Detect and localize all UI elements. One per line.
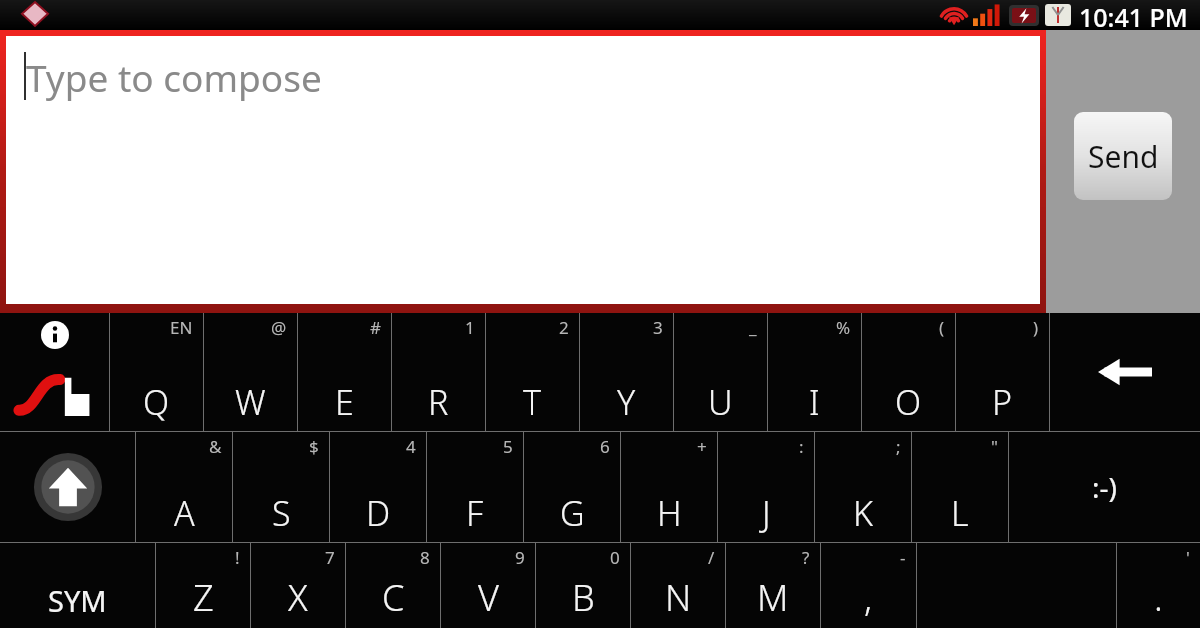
button[interactable]: 9 (441, 543, 535, 628)
staticText: S (272, 490, 291, 536)
button[interactable]: 5 (427, 432, 523, 542)
button[interactable]: 2 (486, 313, 579, 431)
staticText: & (209, 435, 222, 458)
button[interactable]: # (298, 313, 391, 431)
staticText: SYM (48, 581, 107, 620)
staticText: - (900, 546, 906, 569)
staticText: + (697, 435, 707, 458)
button[interactable]: " (912, 432, 1008, 542)
staticText: 7 (325, 546, 335, 569)
staticText: % (836, 316, 851, 339)
staticText: I (809, 379, 820, 425)
staticText: _ (749, 316, 757, 339)
staticText: 9 (515, 546, 525, 569)
staticText: ! (235, 546, 240, 569)
staticText: M (757, 573, 789, 622)
staticText: U (708, 379, 733, 425)
staticText: 5 (503, 435, 513, 458)
staticText: ' (1186, 546, 1190, 569)
staticText: D (366, 490, 391, 536)
staticText: / (708, 546, 715, 569)
staticText: " (991, 435, 998, 458)
button[interactable]: 7 (251, 543, 345, 628)
staticText: H (657, 490, 682, 536)
staticText: ) (1033, 316, 1039, 339)
button[interactable]: Type to compose (6, 36, 1040, 304)
staticText: 1 (465, 316, 475, 339)
staticText: $ (309, 435, 319, 458)
button[interactable]: @ (204, 313, 297, 431)
staticText: :-) (1092, 468, 1117, 506)
staticText: K (853, 490, 873, 536)
staticText: 6 (600, 435, 610, 458)
staticText: : (799, 435, 804, 458)
staticText: ; (896, 435, 901, 458)
staticText: N (665, 573, 692, 622)
staticText: # (370, 316, 381, 339)
staticText: ? (802, 546, 810, 569)
button[interactable]: Send (1074, 112, 1172, 200)
staticText: 8 (420, 546, 430, 569)
staticText: ( (939, 316, 945, 339)
button[interactable]: / (631, 543, 725, 628)
button[interactable]: SYM (0, 543, 155, 628)
staticText: J (762, 490, 771, 536)
button[interactable]: ) (956, 313, 1049, 431)
staticText: W (235, 379, 266, 425)
button[interactable]: EN (110, 313, 203, 431)
button[interactable]: - (821, 543, 916, 628)
staticText: R (428, 379, 449, 425)
button[interactable]: Shift (0, 432, 135, 542)
staticText: V (478, 573, 499, 622)
button[interactable]: ? (726, 543, 820, 628)
staticText: Y (617, 379, 636, 425)
staticText: Q (143, 379, 170, 425)
staticText: 2 (559, 316, 569, 339)
staticText: E (335, 379, 354, 425)
staticText: @ (271, 316, 287, 339)
staticText: EN (170, 316, 193, 339)
staticText: Send (1088, 136, 1159, 177)
staticText: T (523, 379, 542, 425)
button[interactable]: ! (156, 543, 250, 628)
staticText: B (572, 573, 595, 622)
button[interactable]: 0 (536, 543, 630, 628)
staticText: C (382, 573, 405, 622)
button[interactable]: ; (815, 432, 911, 542)
button[interactable]: ( (862, 313, 955, 431)
staticText: F (466, 490, 484, 536)
button[interactable]: Input options (0, 313, 109, 431)
button[interactable]: + (621, 432, 717, 542)
button[interactable]: 8 (346, 543, 440, 628)
button[interactable]: 1 (392, 313, 485, 431)
staticText: Z (193, 573, 214, 622)
button[interactable]: % (768, 313, 861, 431)
button[interactable]: Backspace (1050, 313, 1200, 431)
button[interactable]: 3 (580, 313, 673, 431)
button[interactable]: ' (1117, 543, 1200, 628)
staticText: O (895, 379, 922, 425)
button[interactable]: $ (233, 432, 329, 542)
staticText: 4 (406, 435, 416, 458)
button[interactable]: 4 (330, 432, 426, 542)
staticText: Type to compose (26, 52, 322, 102)
staticText: A (174, 490, 195, 536)
staticText: G (560, 490, 585, 536)
staticText: 0 (610, 546, 620, 569)
staticText: 10:41 PM (1079, 0, 1188, 30)
staticText: L (951, 490, 969, 536)
button[interactable]: _ (674, 313, 767, 431)
button[interactable]: & (136, 432, 232, 542)
staticText: X (288, 573, 308, 622)
button[interactable]: :-) (1009, 432, 1200, 542)
button[interactable]: 6 (524, 432, 620, 542)
staticText: , (864, 573, 873, 622)
staticText: . (1154, 573, 1163, 622)
staticText: 3 (653, 316, 663, 339)
button[interactable]: : (718, 432, 814, 542)
staticText: P (992, 379, 1013, 425)
